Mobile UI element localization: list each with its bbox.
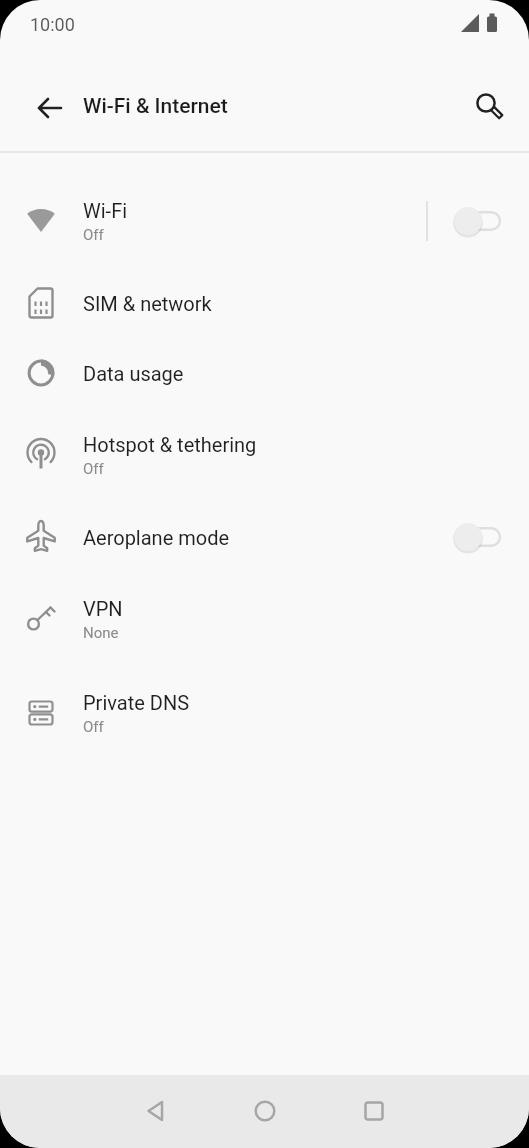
button[interactable] (24, 82, 76, 134)
button[interactable]: SIM & network (0, 268, 529, 338)
button[interactable]: Wi-Fi (0, 174, 529, 268)
staticText: Aeroplane mode (83, 526, 230, 549)
staticText: Off (83, 460, 104, 478)
button[interactable]: Hotspot & tethering (0, 408, 529, 502)
button[interactable]: VPN (0, 572, 529, 666)
staticText: Hotspot & tethering (83, 433, 257, 456)
staticText: Wi-Fi (83, 199, 128, 222)
button[interactable]: Data usage (0, 338, 529, 408)
staticText: 10:00 (30, 14, 75, 35)
staticText: Off (83, 718, 104, 736)
staticText: None (83, 624, 119, 642)
staticText: Private DNS (83, 691, 190, 714)
button[interactable] (210, 1075, 319, 1148)
button[interactable] (101, 1075, 210, 1148)
button[interactable] (319, 1075, 428, 1148)
button[interactable]: Aeroplane mode (0, 502, 529, 572)
staticText: SIM & network (83, 292, 212, 315)
staticText: Off (83, 226, 104, 244)
button[interactable]: Private DNS (0, 666, 529, 760)
button[interactable] (466, 84, 514, 132)
staticText: Wi-Fi & Internet (83, 94, 228, 119)
staticText: Data usage (83, 362, 184, 385)
staticText: VPN (83, 597, 123, 620)
